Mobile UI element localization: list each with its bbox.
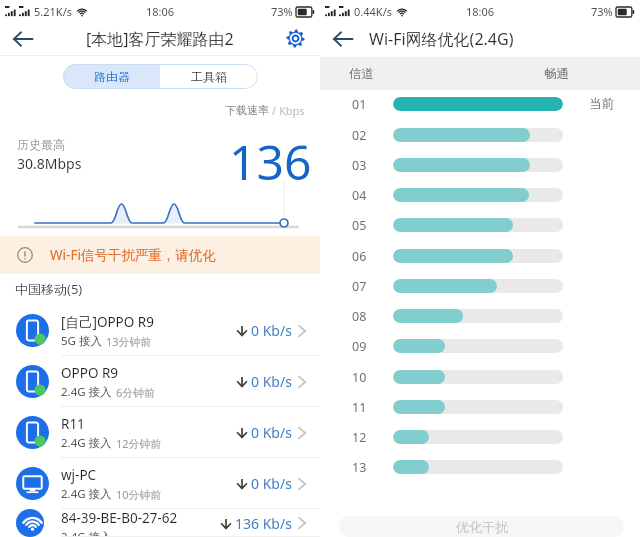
button[interactable]: Wi-Fi信号干扰严重，请优化 [0, 236, 320, 274]
staticText: 中国移动(5) [15, 280, 83, 298]
button[interactable]: 路由器 [63, 64, 160, 89]
staticText: 18:06 [146, 4, 175, 19]
staticText: 下载速率 [225, 103, 269, 117]
staticText: 畅通 [544, 66, 569, 82]
staticText: 信道 [349, 66, 374, 82]
staticText: 5G 接入 [61, 333, 102, 349]
staticText: 2.4G 接入 [61, 384, 112, 400]
staticText: 0.44K/s [354, 4, 392, 19]
staticText: 136 [229, 129, 312, 194]
button[interactable]: 优化干扰 [339, 516, 624, 537]
staticText: 10分钟前 [116, 487, 162, 502]
staticText: 0 Kb/s [251, 321, 292, 340]
button[interactable]: 工具箱 [160, 64, 258, 89]
button[interactable]: Back [331, 27, 355, 51]
staticText: 30.8Mbps [17, 154, 82, 173]
staticText: Wi-Fi网络优化(2.4G) [369, 28, 514, 50]
button[interactable]: 84-39-BE-B0-27-62 [0, 509, 320, 537]
staticText: 2.4G 接入 [61, 435, 112, 451]
staticText: 2.4G 接入 [61, 486, 112, 502]
staticText: R11 [61, 415, 85, 433]
staticText: 工具箱 [191, 69, 227, 84]
staticText: 09 [352, 338, 367, 355]
staticText: 12分钟前 [116, 436, 162, 451]
staticText: 04 [352, 187, 367, 204]
staticText: 05 [352, 217, 367, 234]
staticText: 73% [591, 4, 613, 19]
button[interactable]: [自己]OPPO R9 [0, 305, 320, 356]
staticText: [自己]OPPO R9 [61, 313, 154, 331]
button[interactable]: Back [11, 27, 35, 51]
staticText: 0 Kb/s [251, 372, 292, 391]
staticText: 11 [352, 399, 367, 416]
staticText: 84-39-BE-B0-27-62 [61, 509, 178, 527]
staticText: 优化干扰 [456, 519, 508, 535]
staticText: 03 [352, 157, 367, 174]
staticText: 13 [352, 459, 367, 476]
staticText: / Kbps [272, 103, 305, 118]
staticText: 10 [352, 369, 367, 386]
staticText: 01 [352, 96, 367, 113]
staticText: 07 [352, 278, 367, 295]
staticText: 2.4G 接入 [61, 529, 112, 537]
button[interactable]: R11 [0, 407, 320, 458]
staticText: 路由器 [94, 69, 130, 84]
button[interactable]: wj-PC [0, 458, 320, 509]
button[interactable]: Settings [286, 29, 305, 48]
staticText: OPPO R9 [61, 364, 119, 382]
staticText: 18:06 [466, 4, 495, 19]
staticText: Wi-Fi信号干扰严重，请优化 [50, 246, 216, 264]
staticText: 73% [271, 4, 293, 19]
staticText: 06 [352, 248, 367, 265]
staticText: 5.21K/s [34, 4, 72, 19]
staticText: 历史最高 [17, 137, 65, 152]
staticText: 当前 [589, 96, 614, 112]
staticText: 6分钟前 [116, 385, 156, 400]
staticText: 12 [352, 429, 367, 446]
staticText: [本地]客厅荣耀路由2 [86, 28, 234, 50]
staticText: 0 Kb/s [251, 474, 292, 493]
staticText: 13分钟前 [106, 334, 152, 349]
staticText: 08 [352, 308, 367, 325]
staticText: 136 Kb/s [235, 514, 292, 533]
staticText: 0 Kb/s [251, 423, 292, 442]
button[interactable]: OPPO R9 [0, 356, 320, 407]
staticText: wj-PC [61, 466, 97, 484]
staticText: 02 [352, 127, 367, 144]
